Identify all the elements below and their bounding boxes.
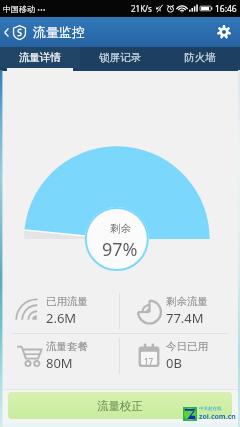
- staticText: 中关村在线: [199, 406, 222, 412]
- staticText: 2.6M: [46, 309, 77, 327]
- button[interactable]: 流量套餐: [0, 334, 119, 378]
- button[interactable]: 流量校正: [8, 392, 232, 419]
- staticText: 流量校正: [97, 399, 143, 413]
- button[interactable]: Settings: [208, 17, 240, 47]
- button[interactable]: Back: [0, 17, 31, 47]
- staticText: 已用流量: [46, 295, 88, 308]
- staticText: 流量监控: [33, 24, 85, 40]
- staticText: zol.com.cn: [199, 412, 236, 422]
- staticText: 中国移动: [3, 4, 35, 14]
- button[interactable]: 已用流量: [0, 289, 119, 333]
- staticText: 防火墙: [184, 51, 216, 64]
- staticText: 77.4M: [166, 309, 204, 327]
- button[interactable]: 锁屏记录: [80, 47, 160, 68]
- staticText: 锁屏记录: [99, 51, 141, 64]
- staticText: 流量详情: [19, 51, 61, 64]
- button[interactable]: 17: [120, 334, 240, 378]
- staticText: 今日已用: [166, 340, 208, 353]
- staticText: 16:46: [215, 3, 237, 15]
- button[interactable]: 流量详情: [0, 47, 80, 68]
- staticText: 流量套餐: [46, 340, 88, 353]
- staticText: 剩余: [110, 222, 131, 235]
- staticText: 17: [144, 356, 154, 367]
- button[interactable]: 防火墙: [160, 47, 240, 68]
- staticText: 97%: [102, 237, 138, 262]
- staticText: 0B: [166, 354, 182, 372]
- staticText: 剩余流量: [166, 295, 208, 308]
- staticText: 80M: [46, 354, 73, 372]
- staticText: 21K/s: [131, 3, 152, 14]
- button[interactable]: 剩余流量: [120, 289, 240, 333]
